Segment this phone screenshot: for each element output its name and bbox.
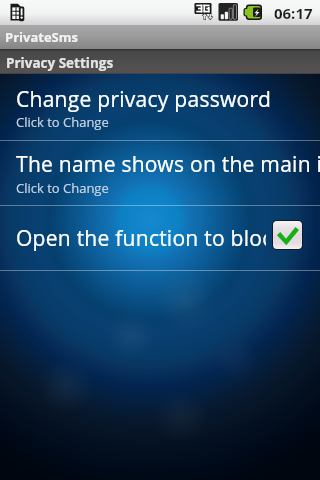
staticText: Open the function to block sms xyxy=(16,224,266,253)
button[interactable]: Change privacy password xyxy=(0,74,320,140)
staticText: Change privacy password xyxy=(16,85,272,114)
button[interactable]: The name shows on the main interface xyxy=(0,141,320,205)
staticText: 06:17 xyxy=(274,3,313,23)
button[interactable]: Open the function to block sms xyxy=(0,206,320,270)
staticText: PrivateSms xyxy=(5,28,78,46)
staticText: Click to Change xyxy=(16,113,109,131)
staticText: Privacy Settings xyxy=(6,54,114,72)
other: Block SMS enabled xyxy=(273,221,302,249)
staticText: The name shows on the main interface xyxy=(16,150,320,179)
staticText: Click to Change xyxy=(16,179,109,197)
